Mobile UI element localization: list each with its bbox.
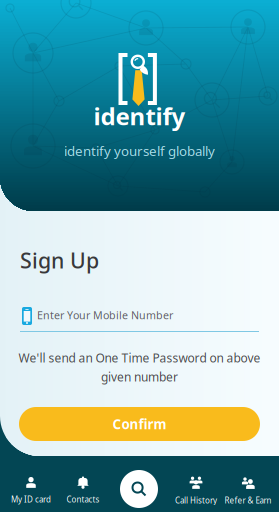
staticText: given number — [101, 369, 178, 385]
staticText: Contacts — [66, 494, 99, 505]
staticText: My ID card — [11, 494, 51, 505]
button[interactable]: Search — [120, 470, 158, 508]
button[interactable]: My ID card — [5, 476, 57, 510]
staticText: Enter Your Mobile Number — [37, 308, 173, 322]
staticText: Call History — [175, 495, 217, 506]
button[interactable]: Refer & Earn — [222, 476, 274, 510]
button[interactable]: Contacts — [57, 476, 109, 510]
button[interactable]: Call History — [170, 476, 222, 510]
staticText: identify — [93, 100, 185, 132]
staticText: Refer & Earn — [224, 495, 271, 506]
staticText: identify yourself globally — [64, 142, 215, 160]
staticText: Sign Up — [20, 246, 99, 274]
staticText: We'll send an One Time Password on above — [18, 350, 260, 366]
button[interactable]: Confirm — [19, 407, 260, 441]
staticText: Confirm — [112, 415, 166, 433]
